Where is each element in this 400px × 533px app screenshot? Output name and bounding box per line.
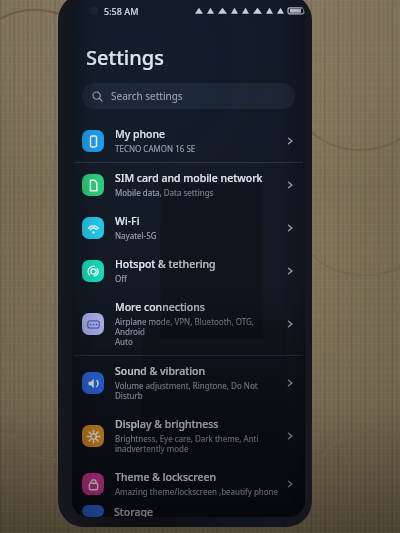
button[interactable]: Wi-Fi <box>72 206 305 249</box>
button[interactable]: More connections <box>72 292 305 355</box>
staticText: Off <box>115 273 127 284</box>
staticText: Airplane mode, VPN, Bluetooth, OTG, Andr… <box>115 316 279 347</box>
staticText: Mobile data, Data settings <box>115 187 214 198</box>
staticText: SIM card and mobile network <box>115 171 263 185</box>
staticText: Settings <box>86 44 164 71</box>
button[interactable]: Storage <box>72 505 305 517</box>
staticText: Display & brightness <box>115 417 219 431</box>
staticText: Storage <box>114 505 153 517</box>
staticText: Nayatel-5G <box>115 230 157 241</box>
staticText: 5:58 AM <box>104 5 139 17</box>
staticText: TECNO CAMON 16 SE <box>115 143 196 154</box>
button[interactable]: My phone <box>72 119 305 162</box>
button[interactable]: Search settings <box>82 83 295 109</box>
staticText: More connections <box>115 300 205 314</box>
staticText: My phone <box>115 127 166 141</box>
button[interactable]: SIM card and mobile network <box>72 163 305 206</box>
staticText: Hotspot & tethering <box>115 257 216 271</box>
staticText: Amazing theme/lockscreen ,beautify phone <box>115 486 279 497</box>
button[interactable]: Hotspot & tethering <box>72 249 305 292</box>
staticText: Theme & lockscreen <box>115 470 217 484</box>
staticText: Sound & vibration <box>115 364 206 378</box>
staticText: Brightness, Eye care, Dark theme, Anti i… <box>115 433 259 454</box>
button[interactable]: Theme & lockscreen <box>72 462 305 505</box>
staticText: Search settings <box>111 89 183 103</box>
button[interactable]: Display & brightness <box>72 409 305 462</box>
button[interactable]: Sound & vibration <box>72 356 305 409</box>
staticText: Volume adjustment, Ringtone, Do Not Dist… <box>115 380 279 401</box>
staticText: Wi-Fi <box>115 214 140 228</box>
